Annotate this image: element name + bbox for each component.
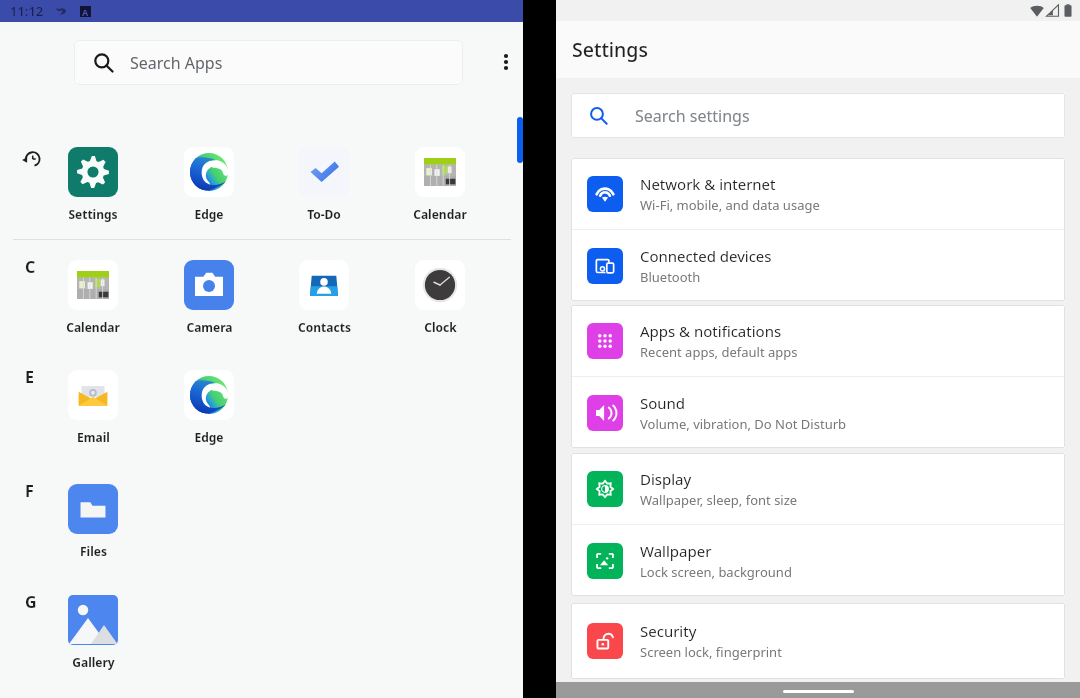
staticText: Calendar [413,206,467,222]
staticText: Bluetooth [640,268,701,286]
staticText: Recent apps, default apps [640,343,798,361]
button[interactable]: Apps & notifications [571,305,1065,376]
button[interactable]: Calendar [400,147,480,222]
staticText: Screen lock, fingerprint [640,643,782,661]
staticText: Clock [424,319,457,335]
staticText: Camera [186,319,233,335]
staticText: Wallpaper, sleep, font size [640,491,798,509]
button[interactable]: Edge [169,370,249,445]
staticText: Apps & notifications [640,321,782,341]
button[interactable]: Clock [400,260,480,335]
staticText: Lock screen, background [640,563,792,581]
staticText: Files [80,543,107,559]
staticText: Wi-Fi, mobile, and data usage [640,196,820,214]
staticText: Network & internet [640,174,776,194]
staticText: E [25,366,34,388]
button[interactable]: Contacts [284,260,364,335]
staticText: Settings [572,36,648,63]
staticText: To-Do [307,206,341,222]
staticText: C [25,256,36,278]
button[interactable]: Connected devices [571,230,1065,301]
staticText: A [82,6,89,17]
staticText: 11:12 [10,2,44,20]
staticText: Security [640,621,697,641]
staticText: Gallery [72,654,115,670]
button[interactable]: To-Do [284,147,364,222]
button[interactable]: Search Apps [74,40,463,85]
button[interactable]: Files [53,484,133,559]
button[interactable]: More options [491,47,521,77]
button[interactable]: Settings [53,147,133,222]
staticText: Email [77,429,110,445]
button[interactable]: Security [571,603,1065,679]
button[interactable]: Camera [169,260,249,335]
staticText: Connected devices [640,246,772,266]
button[interactable]: Sound [571,377,1065,448]
staticText: F [25,480,34,502]
staticText: Edge [194,429,224,445]
staticText: Sound [640,393,686,413]
button[interactable]: Calendar [53,260,133,335]
staticText: Settings [68,206,118,222]
button[interactable]: Network & internet [571,158,1065,229]
staticText: G [25,591,37,613]
staticText: Contacts [298,319,351,335]
button[interactable]: Email [53,370,133,445]
button[interactable]: Wallpaper [571,525,1065,596]
staticText: Display [640,469,692,489]
staticText: Wallpaper [640,541,712,561]
staticText: Search Apps [130,52,223,74]
button[interactable]: Edge [169,147,249,222]
staticText: Search settings [635,105,750,127]
staticText: Edge [194,206,224,222]
staticText: Calendar [66,319,120,335]
button[interactable]: Display [571,453,1065,524]
button[interactable]: Gallery [53,595,133,670]
button[interactable]: Search settings [571,93,1065,138]
staticText: Volume, vibration, Do Not Disturb [640,415,847,433]
